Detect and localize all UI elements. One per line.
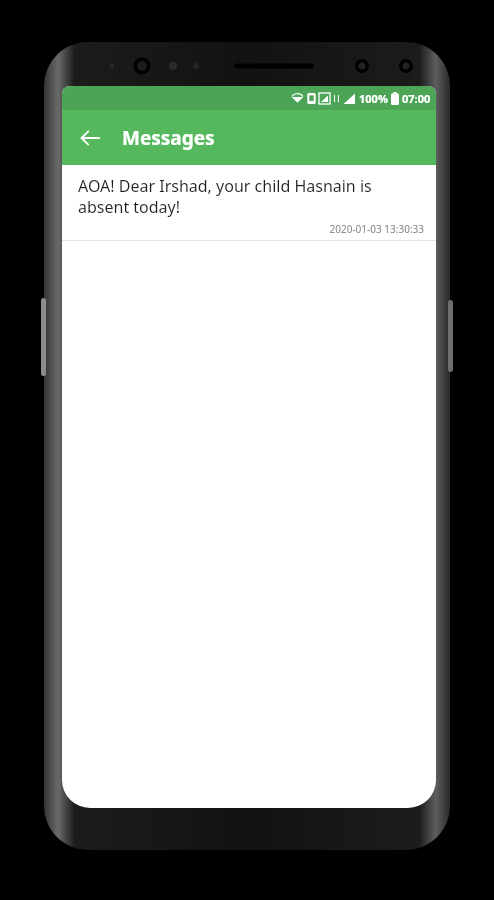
staticText: 07:00: [402, 91, 431, 106]
button[interactable]: AOA! Dear Irshad, your child Hasnain is …: [62, 165, 436, 240]
staticText: 2020-01-03 13:30:33: [78, 222, 424, 236]
staticText: Messages: [122, 125, 215, 151]
staticText: AOA! Dear Irshad, your child Hasnain is …: [78, 175, 424, 218]
staticText: 100%: [359, 91, 388, 106]
button[interactable]: Back: [68, 116, 112, 160]
